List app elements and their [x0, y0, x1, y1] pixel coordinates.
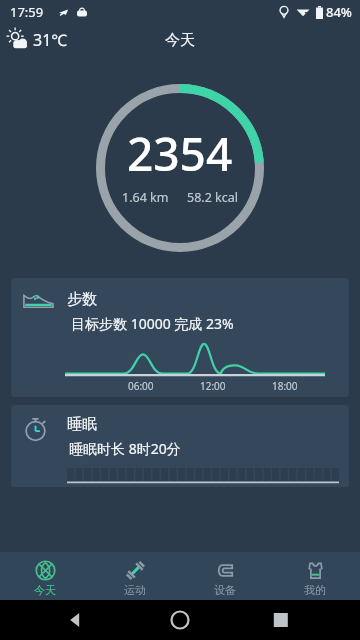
- button[interactable]: 步数: [11, 278, 349, 397]
- button[interactable]: 今天: [0, 556, 90, 597]
- staticText: 睡眠时长 8时20分: [69, 439, 181, 458]
- staticText: 1.64 km: [122, 189, 169, 206]
- staticText: 设备: [214, 583, 236, 597]
- button[interactable]: 运动: [90, 556, 180, 597]
- staticText: 31℃: [33, 29, 68, 51]
- staticText: 目标步数 10000 完成 23%: [71, 314, 234, 333]
- staticText: 2354: [127, 122, 233, 185]
- button[interactable]: 我的: [270, 556, 360, 597]
- button[interactable]: 设备: [180, 556, 270, 597]
- staticText: 我的: [304, 583, 326, 597]
- staticText: 17:59: [10, 3, 44, 21]
- staticText: 12:00: [200, 379, 226, 393]
- button[interactable]: 睡眠: [11, 405, 349, 487]
- staticText: 18:00: [272, 379, 298, 393]
- staticText: 睡眠: [67, 415, 97, 434]
- staticText: 今天: [165, 31, 195, 50]
- staticText: 今天: [34, 583, 56, 597]
- staticText: 步数: [67, 290, 97, 309]
- staticText: 06:00: [128, 379, 154, 393]
- staticText: 58.2 kcal: [187, 189, 238, 206]
- staticText: 84%: [326, 3, 352, 21]
- staticText: 运动: [124, 583, 146, 597]
